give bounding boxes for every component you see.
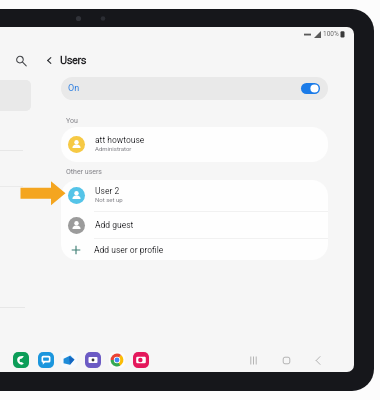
button[interactable]: Mail bbox=[61, 352, 77, 368]
button[interactable]: Recent apps bbox=[240, 347, 266, 373]
staticText: User 2 bbox=[95, 186, 120, 196]
staticText: Users bbox=[60, 54, 87, 67]
button[interactable]: Home bbox=[273, 347, 299, 373]
staticText: Add user or profile bbox=[94, 245, 164, 255]
staticText: att howtouse bbox=[95, 135, 145, 145]
staticText: Add guest bbox=[95, 220, 134, 230]
button[interactable]: Back bbox=[305, 347, 331, 373]
staticText: Administrator bbox=[95, 145, 132, 152]
staticText: Other users bbox=[66, 168, 102, 176]
button[interactable]: Phone bbox=[13, 352, 29, 368]
button[interactable]: User 2 bbox=[61, 180, 328, 211]
button[interactable]: Messages bbox=[38, 352, 54, 368]
button[interactable]: Video bbox=[85, 352, 101, 368]
button[interactable]: Navigate up bbox=[36, 47, 62, 73]
button[interactable]: Chrome bbox=[109, 352, 125, 368]
button[interactable]: Camera bbox=[133, 352, 149, 368]
staticText: You bbox=[66, 117, 78, 125]
staticText: 100% bbox=[323, 30, 339, 38]
button[interactable]: att howtouse bbox=[61, 127, 328, 162]
button[interactable]: Add guest bbox=[61, 212, 328, 238]
button[interactable]: Search bbox=[6, 46, 34, 74]
button[interactable]: Add user or profile bbox=[61, 239, 328, 260]
staticText: Not set up bbox=[95, 196, 123, 203]
staticText: On bbox=[68, 83, 80, 94]
button[interactable]: On bbox=[61, 77, 328, 100]
